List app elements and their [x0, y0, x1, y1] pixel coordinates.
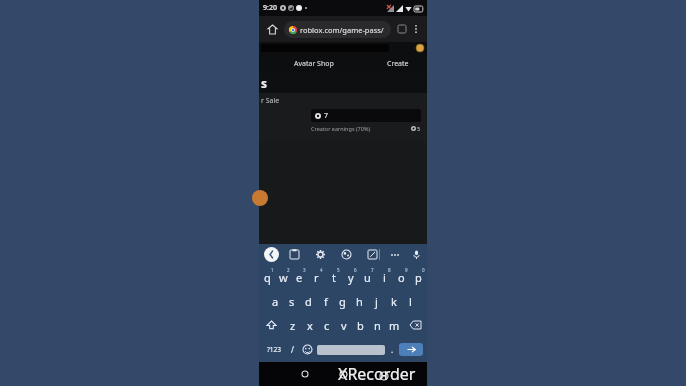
button[interactable]: n: [369, 313, 386, 337]
staticText: roblox.com/game-pass/: [300, 25, 384, 35]
staticText: m: [389, 318, 400, 333]
button[interactable]: Space: [317, 345, 385, 355]
button[interactable]: .: [385, 340, 399, 359]
button[interactable]: e: [291, 265, 308, 289]
button[interactable]: z: [284, 313, 301, 337]
staticText: 7: [324, 111, 329, 121]
button[interactable]: More: [388, 248, 401, 261]
staticText: b: [357, 318, 364, 333]
staticText: k: [391, 294, 397, 309]
button[interactable]: t: [325, 265, 342, 289]
staticText: 9: [405, 267, 408, 273]
button[interactable]: Voice input: [411, 248, 422, 261]
button[interactable]: Emoji: [299, 340, 315, 359]
button[interactable]: Home: [297, 366, 313, 382]
staticText: u: [364, 270, 371, 285]
button[interactable]: k: [385, 289, 402, 313]
button[interactable]: Settings: [314, 248, 327, 261]
staticText: 5: [337, 267, 340, 273]
staticText: g: [339, 294, 346, 309]
button[interactable]: ?123: [263, 340, 285, 359]
button[interactable]: y: [342, 265, 359, 289]
staticText: 5: [417, 125, 421, 132]
staticText: v: [341, 318, 347, 333]
button[interactable]: Clipboard: [288, 248, 301, 261]
button[interactable]: l: [402, 289, 419, 313]
button[interactable]: j: [368, 289, 385, 313]
staticText: r Sale: [261, 96, 280, 106]
staticText: 3: [303, 267, 306, 273]
button[interactable]: x: [301, 313, 318, 337]
staticText: d: [305, 294, 312, 309]
staticText: s: [289, 294, 295, 309]
staticText: Creator earnings (70%): [311, 125, 371, 132]
button[interactable]: Translate: [366, 248, 379, 261]
staticText: q: [264, 270, 271, 285]
staticText: s: [261, 75, 268, 91]
button[interactable]: g: [334, 289, 351, 313]
button[interactable]: Enter: [399, 343, 423, 356]
button[interactable]: v: [335, 313, 352, 337]
button[interactable]: Tabs: [395, 22, 409, 36]
button[interactable]: Shift: [259, 313, 284, 337]
staticText: /: [291, 344, 294, 355]
button[interactable]: i: [376, 265, 393, 289]
button[interactable]: More options: [409, 22, 423, 36]
button[interactable]: Create: [369, 54, 427, 73]
staticText: n: [374, 318, 381, 333]
button[interactable]: w: [275, 265, 291, 289]
staticText: ?123: [267, 345, 281, 354]
button[interactable]: m: [386, 313, 403, 337]
staticText: e: [296, 270, 303, 285]
button[interactable]: q: [259, 265, 275, 289]
staticText: l: [409, 294, 412, 309]
button[interactable]: Themes: [340, 248, 353, 261]
button[interactable]: c: [318, 313, 335, 337]
staticText: a: [272, 294, 279, 309]
button[interactable]: 7: [311, 109, 421, 122]
button[interactable]: f: [317, 289, 334, 313]
staticText: o: [398, 270, 405, 285]
staticText: r: [314, 270, 319, 285]
button[interactable]: b: [352, 313, 369, 337]
staticText: f: [324, 294, 328, 309]
button[interactable]: o: [393, 265, 410, 289]
staticText: 1: [271, 267, 274, 273]
staticText: 9:20: [263, 3, 277, 13]
button[interactable]: roblox.com/game-pass/: [284, 21, 391, 38]
button[interactable]: Backspace: [403, 313, 427, 337]
staticText: p: [415, 270, 422, 285]
button[interactable]: /: [285, 340, 299, 359]
staticText: h: [356, 294, 363, 309]
button[interactable]: r: [308, 265, 325, 289]
staticText: 8: [388, 267, 391, 273]
staticText: 6: [354, 267, 357, 273]
staticText: x: [307, 318, 313, 333]
staticText: 2: [287, 267, 290, 273]
staticText: Avatar Shop: [294, 59, 334, 69]
button[interactable]: u: [359, 265, 376, 289]
staticText: i: [383, 270, 386, 285]
button[interactable]: h: [351, 289, 368, 313]
staticText: z: [290, 318, 296, 333]
staticText: j: [375, 294, 378, 309]
button[interactable]: Home: [263, 20, 281, 38]
staticText: 4: [320, 267, 323, 273]
button[interactable]: Avatar Shop: [259, 54, 369, 73]
staticText: 7: [371, 267, 374, 273]
staticText: .: [391, 344, 394, 355]
staticText: Create: [387, 59, 409, 69]
button[interactable]: p: [410, 265, 427, 289]
staticText: w: [279, 270, 288, 285]
button[interactable]: a: [267, 289, 283, 313]
staticText: 0: [422, 267, 425, 273]
staticText: y: [348, 270, 354, 285]
staticText: XRecorder: [338, 363, 416, 385]
staticText: c: [324, 318, 330, 333]
button[interactable]: d: [300, 289, 317, 313]
staticText: t: [332, 270, 336, 285]
button[interactable]: s: [283, 289, 300, 313]
button[interactable]: Back: [264, 247, 279, 262]
